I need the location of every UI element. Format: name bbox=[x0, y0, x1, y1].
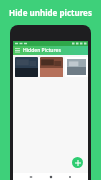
button[interactable]: Menu bbox=[13, 46, 88, 55]
button[interactable]: Back bbox=[29, 175, 33, 179]
staticText: Hidden Pictures bbox=[23, 47, 61, 54]
button[interactable]: Menu bbox=[15, 48, 20, 53]
staticText: Hide unhide pictures bbox=[9, 7, 92, 18]
button[interactable] bbox=[65, 57, 88, 77]
button[interactable]: Add bbox=[72, 157, 83, 168]
button[interactable] bbox=[40, 57, 63, 77]
button[interactable] bbox=[15, 57, 38, 77]
button[interactable]: Recents bbox=[68, 175, 72, 179]
button[interactable]: Home bbox=[49, 175, 53, 179]
